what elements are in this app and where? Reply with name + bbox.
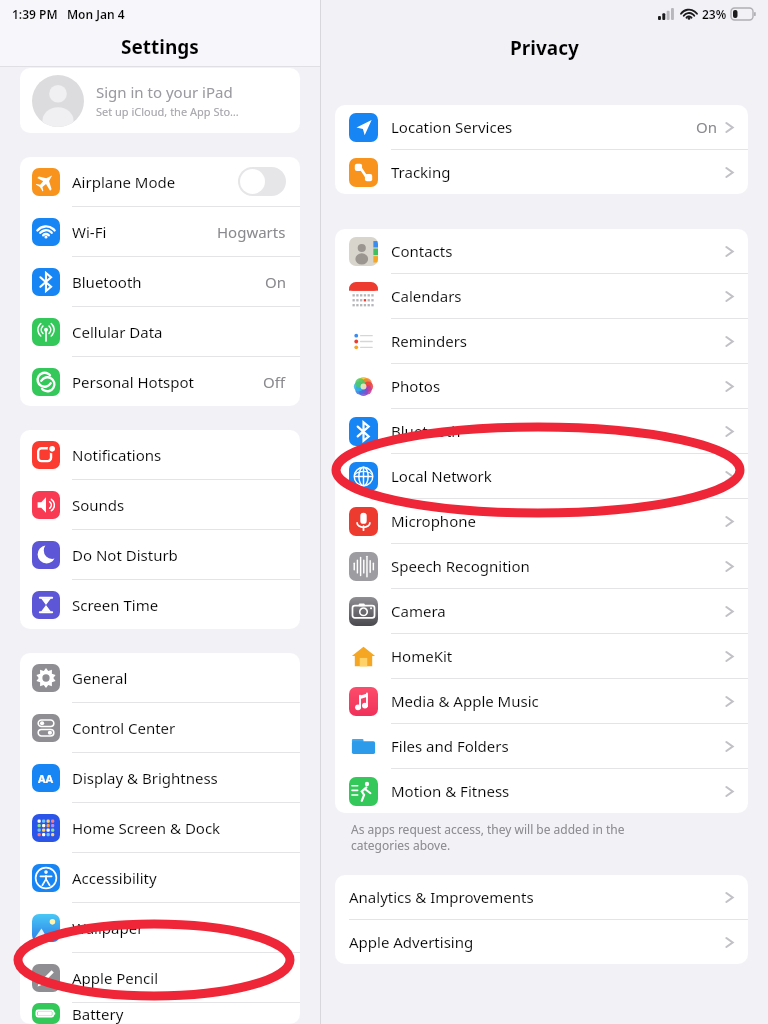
staticText: Cellular Data bbox=[72, 322, 286, 342]
staticText: Screen Time bbox=[72, 595, 286, 615]
staticText: Motion & Fitness bbox=[391, 781, 725, 801]
staticText: Reminders bbox=[391, 331, 725, 351]
button[interactable]: Files and Folders bbox=[335, 724, 748, 768]
staticText: AA bbox=[38, 771, 54, 786]
staticText: Notifications bbox=[72, 445, 286, 465]
button[interactable]: Media & Apple Music bbox=[335, 679, 748, 723]
staticText: On bbox=[265, 272, 286, 292]
staticText: Camera bbox=[391, 601, 725, 621]
button[interactable]: Notifications bbox=[20, 430, 300, 479]
staticText: 1:39 PM Mon Jan 4 bbox=[12, 6, 125, 22]
button[interactable]: Motion & Fitness bbox=[335, 769, 748, 813]
button[interactable]: Do Not Disturb bbox=[20, 530, 300, 579]
button[interactable]: HomeKit bbox=[335, 634, 748, 678]
staticText: On bbox=[696, 117, 717, 137]
staticText: Set up iCloud, the App Sto… bbox=[96, 104, 239, 119]
staticText: Calendars bbox=[391, 286, 725, 306]
button[interactable]: Sounds bbox=[20, 480, 300, 529]
button[interactable]: Bluetooth bbox=[20, 257, 300, 306]
button[interactable]: Accessibility bbox=[20, 853, 300, 902]
staticText: Bluetooth bbox=[72, 272, 265, 292]
button[interactable]: Wi-Fi bbox=[20, 207, 300, 256]
button[interactable]: Local Network bbox=[335, 454, 748, 498]
staticText: Home Screen & Dock bbox=[72, 818, 286, 838]
staticText: Sounds bbox=[72, 495, 286, 515]
staticText: Analytics & Improvements bbox=[349, 887, 725, 907]
button[interactable]: Control Center bbox=[20, 703, 300, 752]
staticText: Do Not Disturb bbox=[72, 545, 286, 565]
button[interactable]: Sign in to your iPad bbox=[20, 68, 300, 133]
staticText: Control Center bbox=[72, 718, 286, 738]
button[interactable]: Microphone bbox=[335, 499, 748, 543]
button[interactable]: Airplane Mode bbox=[20, 157, 300, 206]
staticText: General bbox=[72, 668, 286, 688]
staticText: Airplane Mode bbox=[72, 172, 238, 192]
staticText: Wi-Fi bbox=[72, 222, 217, 242]
staticText: Battery bbox=[72, 1004, 286, 1024]
staticText: Tracking bbox=[391, 162, 725, 182]
button[interactable]: Tracking bbox=[335, 150, 748, 194]
button[interactable]: Calendars bbox=[335, 274, 748, 318]
button[interactable]: Screen Time bbox=[20, 580, 300, 629]
staticText: Settings bbox=[121, 34, 199, 60]
staticText: Apple Advertising bbox=[349, 932, 725, 952]
button[interactable]: Apple Pencil bbox=[20, 953, 300, 1002]
staticText: Microphone bbox=[391, 511, 725, 531]
staticText: Sign in to your iPad bbox=[96, 82, 233, 102]
button[interactable]: Battery bbox=[20, 1003, 300, 1024]
button[interactable]: Reminders bbox=[335, 319, 748, 363]
staticText: Files and Folders bbox=[391, 736, 725, 756]
staticText: As apps request access, they will be add… bbox=[351, 821, 625, 853]
staticText: Local Network bbox=[391, 466, 725, 486]
button[interactable]: Airplane Mode toggle bbox=[238, 167, 286, 196]
staticText: Privacy bbox=[510, 35, 579, 61]
button[interactable]: General bbox=[20, 653, 300, 702]
button[interactable]: Analytics & Improvements bbox=[335, 875, 748, 919]
staticText: Hogwarts bbox=[217, 222, 286, 242]
staticText: Bluetooth bbox=[391, 421, 725, 441]
button[interactable]: Apple Advertising bbox=[335, 920, 748, 964]
staticText: Personal Hotspot bbox=[72, 372, 263, 392]
button[interactable]: Cellular Data bbox=[20, 307, 300, 356]
staticText: Accessibility bbox=[72, 868, 286, 888]
staticText: Photos bbox=[391, 376, 725, 396]
button[interactable]: Photos bbox=[335, 364, 748, 408]
button[interactable]: Personal Hotspot bbox=[20, 357, 300, 406]
button[interactable]: AA bbox=[20, 753, 300, 802]
staticText: Off bbox=[263, 372, 286, 392]
staticText: Apple Pencil bbox=[72, 968, 286, 988]
button[interactable]: Camera bbox=[335, 589, 748, 633]
button[interactable]: Contacts bbox=[335, 229, 748, 273]
staticText: Location Services bbox=[391, 117, 696, 137]
button[interactable]: Bluetooth bbox=[335, 409, 748, 453]
staticText: Speech Recognition bbox=[391, 556, 725, 576]
staticText: HomeKit bbox=[391, 646, 725, 666]
button[interactable]: Home Screen & Dock bbox=[20, 803, 300, 852]
button[interactable]: Location Services bbox=[335, 105, 748, 149]
staticText: Wallpaper bbox=[72, 918, 286, 938]
button[interactable]: Wallpaper bbox=[20, 903, 300, 952]
staticText: 23% bbox=[702, 6, 727, 22]
button[interactable]: Speech Recognition bbox=[335, 544, 748, 588]
staticText: Contacts bbox=[391, 241, 725, 261]
staticText: Display & Brightness bbox=[72, 768, 286, 788]
staticText: Media & Apple Music bbox=[391, 691, 725, 711]
